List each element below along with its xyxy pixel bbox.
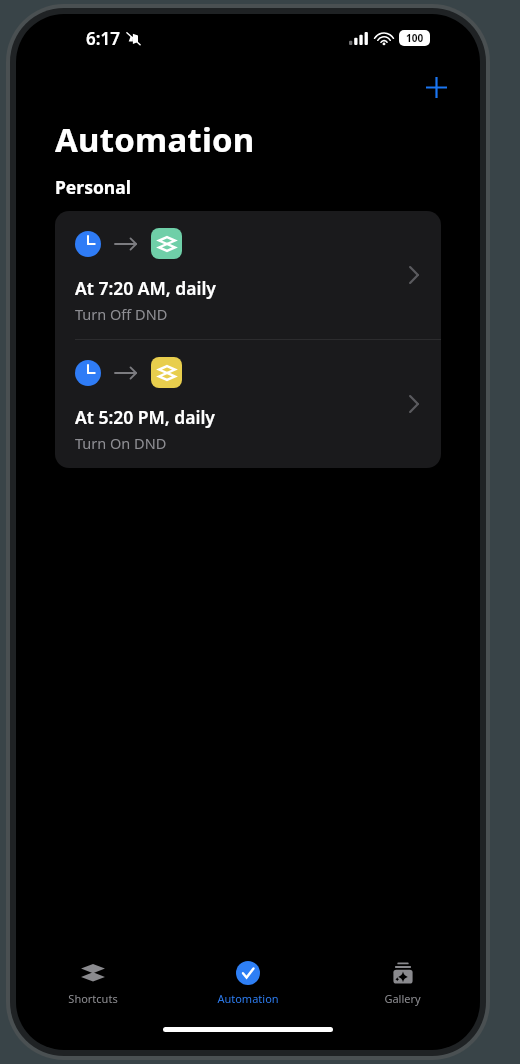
button[interactable]: Gallery xyxy=(325,950,480,1018)
staticText: Automation xyxy=(55,117,255,162)
button[interactable]: At 7:20 AM, daily xyxy=(55,211,441,339)
staticText: Gallery xyxy=(384,991,421,1006)
staticText: 100 xyxy=(406,31,424,45)
staticText: Personal xyxy=(55,175,131,199)
staticText: Turn On DND xyxy=(75,433,167,453)
button[interactable]: Automation xyxy=(170,950,325,1018)
staticText: Turn Off DND xyxy=(75,304,168,324)
staticText: Shortcuts xyxy=(68,991,118,1006)
button[interactable]: Shortcuts xyxy=(16,950,170,1018)
staticText: Automation xyxy=(217,991,279,1006)
staticText: 6:17 xyxy=(86,27,120,50)
button[interactable]: At 5:20 PM, daily xyxy=(55,340,441,468)
button[interactable]: Create Automation xyxy=(418,70,454,104)
staticText: At 5:20 PM, daily xyxy=(75,405,215,429)
staticText: At 7:20 AM, daily xyxy=(75,276,216,300)
